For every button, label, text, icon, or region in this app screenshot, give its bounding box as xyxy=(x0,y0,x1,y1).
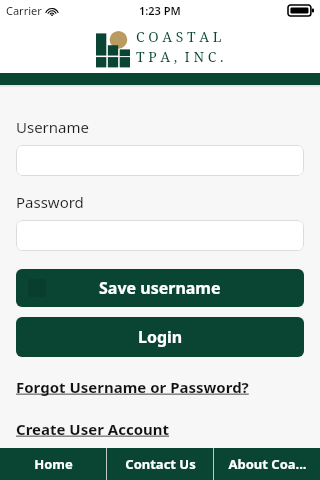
staticText: Login xyxy=(138,326,183,348)
staticText: Save username xyxy=(99,277,221,299)
staticText: About Coa... xyxy=(228,455,307,473)
button[interactable]: Login xyxy=(16,317,304,357)
button[interactable]: Save username xyxy=(16,269,304,307)
staticText: Contact Us xyxy=(125,455,196,473)
staticText: T P A , I N C . xyxy=(136,47,224,66)
staticText: Home xyxy=(34,455,73,473)
button[interactable] xyxy=(16,220,304,251)
button[interactable]: Home xyxy=(0,448,106,480)
staticText: C O A S T A L xyxy=(136,27,222,46)
staticText: Username xyxy=(16,117,89,137)
staticText: 1:23 PM xyxy=(139,3,181,18)
staticText: Forgot Username or Password? xyxy=(16,377,249,397)
staticText: Create User Account xyxy=(16,419,170,439)
staticText: Password xyxy=(16,192,84,212)
button[interactable]: Contact Us xyxy=(107,448,213,480)
button[interactable]: About Coa... xyxy=(214,448,320,480)
button[interactable] xyxy=(16,145,304,176)
button[interactable]: Forgot Username or Password? xyxy=(16,377,249,397)
staticText: Carrier xyxy=(6,3,42,18)
button[interactable]: Create User Account xyxy=(16,419,170,439)
